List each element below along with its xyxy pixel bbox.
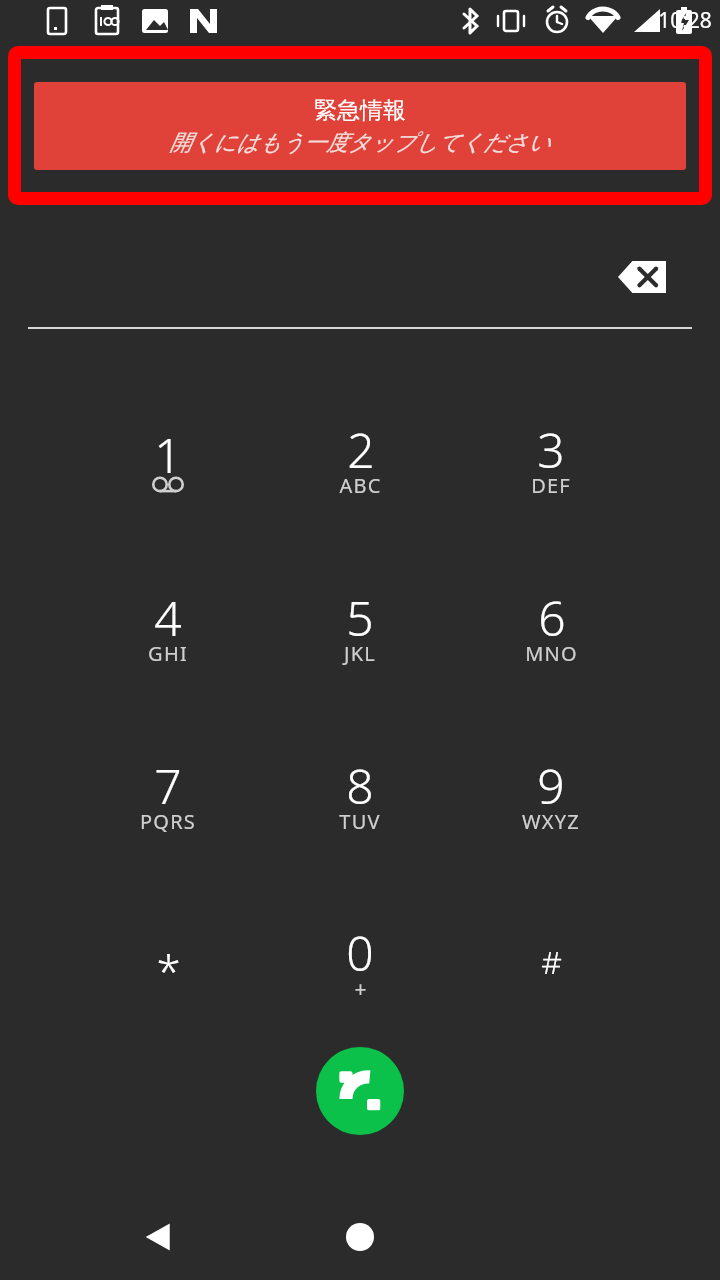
staticText: JKL — [344, 640, 376, 667]
button[interactable]: # — [473, 900, 629, 1024]
staticText: MNO — [525, 640, 578, 667]
staticText: 7 — [154, 753, 182, 807]
staticText: DEF — [531, 472, 571, 499]
button[interactable]: * — [90, 900, 246, 1024]
button[interactable]: Call — [316, 1047, 404, 1135]
button[interactable]: 6 — [473, 564, 629, 688]
staticText: 4 — [154, 585, 182, 639]
button[interactable]: 3 — [473, 396, 629, 520]
button[interactable]: 0 — [282, 900, 438, 1024]
staticText: 0 — [346, 920, 374, 974]
staticText: 2 — [347, 417, 375, 471]
staticText: 5 — [346, 585, 374, 639]
button[interactable]: 緊急情報 — [8, 46, 712, 205]
button[interactable]: Back — [118, 1207, 198, 1267]
button[interactable]: 2 — [282, 396, 438, 520]
staticText: 1 — [154, 422, 182, 476]
staticText: 開くにはもう一度タップしてください — [169, 129, 551, 157]
staticText: WXYZ — [522, 808, 580, 835]
staticText: 6 — [538, 585, 566, 639]
staticText: 9 — [537, 753, 565, 807]
staticText: TUV — [339, 808, 381, 835]
button[interactable]: 7 — [90, 732, 246, 856]
staticText: * — [156, 941, 181, 995]
button[interactable]: 1 — [90, 396, 246, 520]
staticText: 8 — [346, 753, 374, 807]
staticText: PQRS — [140, 808, 196, 835]
button[interactable]: 9 — [473, 732, 629, 856]
button[interactable]: 8 — [282, 732, 438, 856]
staticText: 10:28 — [658, 6, 712, 35]
button[interactable]: 5 — [282, 564, 438, 688]
staticText: 緊急情報 — [314, 96, 406, 125]
staticText: ABC — [339, 472, 382, 499]
staticText: GHI — [148, 640, 188, 667]
staticText: 3 — [537, 417, 565, 471]
button[interactable]: Home — [320, 1207, 400, 1267]
button[interactable]: 4 — [90, 564, 246, 688]
button[interactable]: Backspace — [596, 245, 688, 309]
staticText: + — [354, 975, 367, 1004]
staticText: # — [541, 940, 562, 984]
